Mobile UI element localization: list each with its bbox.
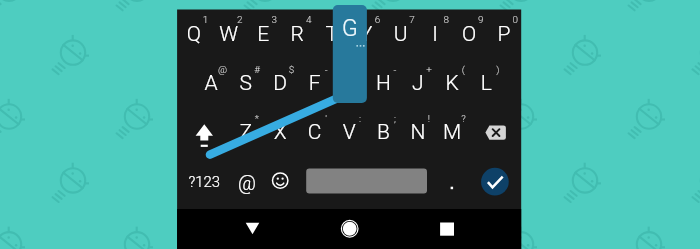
button[interactable]: E	[246, 10, 280, 58]
button[interactable]: B	[366, 107, 400, 156]
button[interactable]: X	[263, 107, 297, 156]
button[interactable]: Home	[292, 209, 407, 249]
button[interactable]: V	[332, 107, 366, 156]
button[interactable]: Q	[177, 10, 211, 58]
button[interactable]: Z	[229, 107, 263, 156]
button[interactable]: Enter	[456, 156, 521, 204]
button[interactable]: Recent apps	[407, 209, 521, 249]
button[interactable]: G	[332, 58, 366, 107]
button[interactable]: At sign	[229, 156, 263, 204]
button[interactable]: Emoji	[263, 156, 297, 204]
button[interactable]: H	[366, 58, 400, 107]
button[interactable]: T	[315, 10, 349, 58]
button[interactable]: N	[401, 107, 435, 156]
button[interactable]: Period	[421, 156, 455, 204]
button[interactable]: Back	[177, 209, 292, 249]
button[interactable]: I	[418, 10, 452, 58]
button[interactable]: Y	[349, 10, 383, 58]
button[interactable]: K	[435, 58, 469, 107]
button[interactable]: O	[452, 10, 486, 58]
button[interactable]: A	[194, 58, 228, 107]
button[interactable]: Delete	[470, 107, 522, 156]
button[interactable]: ?123 symbols	[177, 156, 229, 204]
button[interactable]: J	[401, 58, 435, 107]
button[interactable]: W	[212, 10, 246, 58]
button[interactable]: P	[487, 10, 521, 58]
button[interactable]: M	[435, 107, 469, 156]
button[interactable]: D	[263, 58, 297, 107]
button[interactable]: S	[229, 58, 263, 107]
button[interactable]: Shift	[177, 107, 229, 156]
button[interactable]: L	[470, 58, 504, 107]
button[interactable]: Space	[298, 156, 422, 204]
button[interactable]: C	[298, 107, 332, 156]
button[interactable]: R	[280, 10, 314, 58]
button[interactable]: F	[298, 58, 332, 107]
button[interactable]: U	[384, 10, 418, 58]
